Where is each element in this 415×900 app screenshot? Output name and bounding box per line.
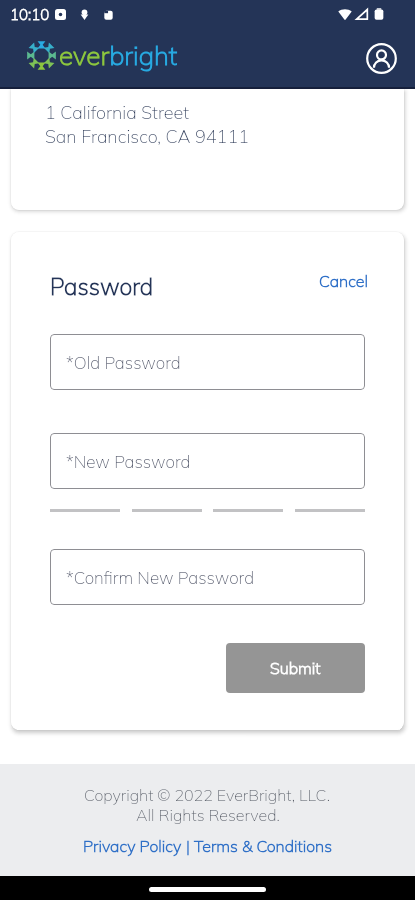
staticText: Password <box>50 272 154 301</box>
staticText: *Confirm New Password <box>66 567 255 588</box>
button[interactable]: Privacy Policy <box>83 836 182 856</box>
staticText: Terms & Conditions <box>194 836 333 856</box>
staticText: Privacy Policy <box>83 836 182 856</box>
button[interactable]: *Old Password <box>50 334 365 390</box>
staticText: *New Password <box>66 451 191 472</box>
button[interactable]: Account <box>362 39 400 77</box>
staticText: 1 California Street <box>45 101 190 124</box>
staticText: San Francisco, CA 94111 <box>45 125 249 148</box>
button[interactable]: Cancel <box>316 266 371 296</box>
button[interactable]: Submit <box>226 643 365 693</box>
staticText: All Rights Reserved. <box>136 805 280 825</box>
button[interactable]: *Confirm New Password <box>50 549 365 605</box>
button[interactable]: Terms & Conditions <box>194 836 333 856</box>
staticText: Copyright © 2022 EverBright, LLC. <box>84 785 331 805</box>
staticText: 10:10 <box>10 5 50 24</box>
staticText: | <box>182 836 194 856</box>
staticText: *Old Password <box>66 352 181 373</box>
staticText: everbright <box>59 39 178 72</box>
staticText: Submit <box>270 658 321 678</box>
button[interactable]: *New Password <box>50 433 365 489</box>
staticText: Cancel <box>319 271 368 291</box>
